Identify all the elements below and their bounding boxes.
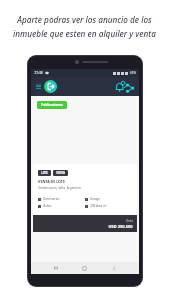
button[interactable]: Notifications — [113, 80, 135, 94]
staticText: 21:30 — [34, 71, 43, 75]
staticText: Garage — [90, 197, 100, 201]
staticText: VENTA DE LOTE — [38, 179, 65, 184]
button[interactable]: Home — [80, 264, 89, 273]
staticText: Venta — [126, 219, 133, 223]
staticText: Dormitorios — [43, 197, 60, 201]
button[interactable]: Recent apps — [52, 264, 60, 272]
button[interactable]: Menu — [35, 83, 42, 90]
button[interactable]: Back — [110, 264, 119, 273]
staticText: 65% — [130, 71, 136, 75]
button[interactable]: VENTA — [53, 170, 68, 176]
staticText: inmueble que esten en alquiler y venta — [13, 28, 156, 39]
staticText: Publicaciones — [41, 103, 63, 107]
button[interactable]: LOTE — [38, 170, 51, 176]
staticText: VENTA — [56, 171, 65, 175]
staticText: Baños — [43, 204, 52, 208]
staticText: USD 250.500 — [108, 224, 133, 229]
staticText: 208 Area m² — [90, 204, 107, 208]
staticText: Aparte podras ver los anuncio de los — [17, 14, 152, 25]
staticText: Embarcacion, Salta, Argentina — [38, 186, 81, 190]
button[interactable]: App logo — [44, 80, 57, 93]
staticText: LOTE — [41, 171, 48, 175]
button[interactable]: Publicaciones — [37, 101, 67, 109]
button[interactable]: LOTE — [33, 164, 137, 232]
